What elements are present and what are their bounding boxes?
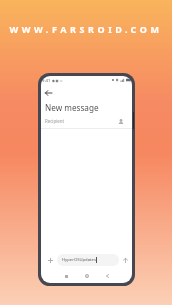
button[interactable]: Back	[42, 87, 54, 99]
button[interactable]: Attach	[45, 255, 55, 265]
button[interactable]: Choose contact	[116, 117, 126, 127]
staticText: WWW.FARSROID.COM	[0, 23, 172, 35]
button[interactable]: HyperOSUpdates	[57, 254, 119, 266]
button[interactable]: NavBack	[101, 270, 113, 282]
staticText: Recipient	[45, 118, 65, 124]
button[interactable]: Home	[81, 270, 93, 282]
button[interactable]: Send	[120, 255, 130, 265]
staticText: 9:41	[42, 78, 51, 84]
staticText: New message	[45, 102, 99, 113]
staticText: HyperOSUpdates	[62, 257, 96, 263]
button[interactable]: Recents	[60, 270, 72, 282]
